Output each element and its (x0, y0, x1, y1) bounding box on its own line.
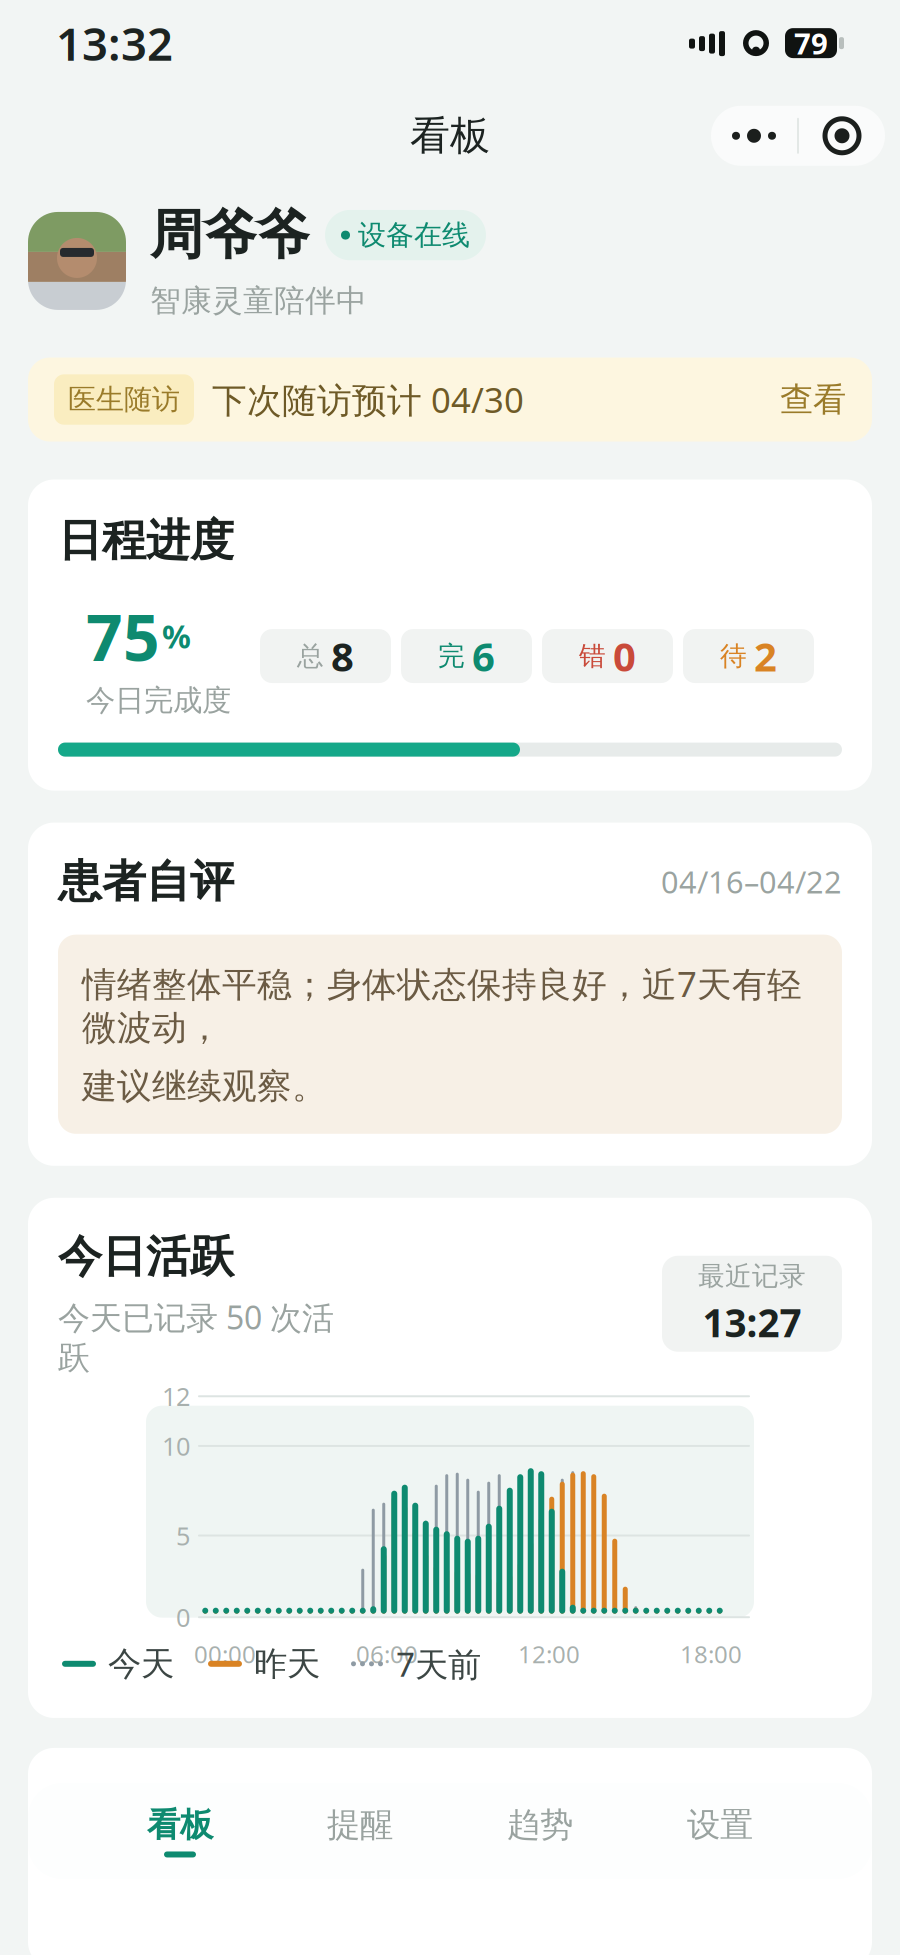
button[interactable]: 看板 (90, 1795, 270, 1867)
staticText: 建议继续观察。 (82, 1065, 327, 1108)
staticText: 趋势 (507, 1804, 573, 1845)
button[interactable]: 设置 (630, 1795, 810, 1867)
staticText: 今天 (108, 1643, 174, 1684)
staticText: 0 (613, 629, 636, 683)
staticText: 错 (579, 640, 606, 672)
staticText: 12:00 (518, 1638, 580, 1670)
staticText: 最近记录 (698, 1260, 806, 1292)
staticText: 5 (176, 1519, 190, 1552)
button[interactable]: 完 (401, 629, 532, 683)
staticText: 周爷爷 (150, 202, 309, 268)
staticText: 7天前 (396, 1642, 481, 1686)
staticText: 完 (438, 640, 465, 672)
button[interactable]: 待 (683, 629, 814, 683)
button[interactable]: 趋势 (450, 1795, 630, 1867)
staticText: 日程进度 (58, 513, 234, 567)
staticText: 设备在线 (358, 218, 470, 252)
staticText: 情绪整体平稳；身体状态保持良好，近7天有轻微波动， (82, 961, 802, 1049)
button[interactable]: 提醒 (270, 1795, 450, 1867)
staticText: % (162, 615, 191, 657)
staticText: 13:32 (56, 13, 173, 73)
staticText: 12 (162, 1379, 190, 1413)
staticText: 总 (297, 640, 324, 672)
staticText: 看板 (147, 1804, 213, 1845)
staticText: 今日活跃 (58, 1230, 234, 1284)
staticText: 查看 (780, 379, 846, 420)
staticText: 今日完成度 (86, 683, 231, 719)
staticText: 下次随访预计 04/30 (212, 376, 524, 422)
staticText: 18:00 (680, 1638, 742, 1670)
staticText: 设置 (687, 1804, 753, 1845)
staticText: 患者自评 (58, 855, 234, 909)
staticText: 13:27 (702, 1296, 801, 1348)
button[interactable]: 错 (542, 629, 673, 683)
staticText: 智康灵童陪伴中 (150, 282, 367, 320)
staticText: 昨天 (254, 1643, 320, 1684)
staticText: 提醒 (327, 1804, 393, 1845)
staticText: 79 (794, 24, 828, 63)
staticText: 今天已记录 50 次活跃 (58, 1296, 334, 1378)
button[interactable]: Record (799, 106, 885, 166)
staticText: 00:00 (194, 1638, 256, 1670)
button[interactable]: 医生随访 (28, 357, 872, 441)
staticText: 2 (754, 629, 777, 683)
staticText: 06:00 (356, 1638, 418, 1670)
button[interactable]: More (711, 106, 797, 166)
staticText: 6 (472, 629, 495, 683)
staticText: 75 (86, 594, 160, 679)
button[interactable]: 总 (260, 629, 391, 683)
staticText: 8 (331, 629, 354, 683)
staticText: 04/16–04/22 (661, 861, 842, 902)
staticText: 看板 (410, 111, 490, 160)
staticText: 待 (720, 640, 747, 672)
staticText: 医生随访 (68, 382, 180, 417)
staticText: 健康洞察 (58, 1784, 234, 1838)
staticText: 10 (162, 1429, 190, 1463)
staticText: 0 (176, 1600, 190, 1634)
